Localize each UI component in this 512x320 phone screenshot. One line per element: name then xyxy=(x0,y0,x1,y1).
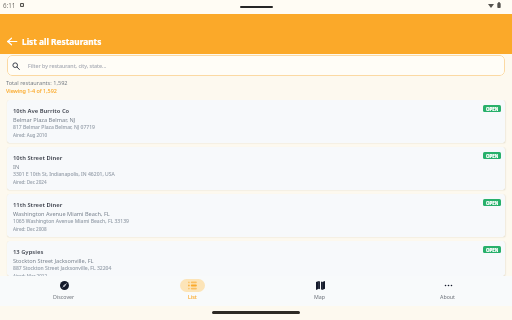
staticText: Aired: Mar 2012 xyxy=(13,273,48,276)
staticText: OPEN xyxy=(486,200,499,206)
staticText: Belmar Plaza Belmar, NJ xyxy=(13,116,76,124)
staticText: 10th Ave Burrito Co xyxy=(13,107,70,115)
staticText: 10th Street Diner xyxy=(13,154,63,162)
staticText: 817 Belmar Plaza Belmar, NJ 07719 xyxy=(13,124,95,131)
staticText: Aired: Dec 2008 xyxy=(13,226,47,232)
button[interactable]: 13 Gypsies xyxy=(7,241,505,276)
staticText: Viewing 1-4 of 1,592 xyxy=(6,87,57,94)
staticText: Aired: Aug 2010 xyxy=(13,132,48,138)
staticText: Aired: Dec 2024 xyxy=(13,179,47,185)
button[interactable]: Discover xyxy=(0,276,128,306)
button[interactable]: 10th Ave Burrito Co xyxy=(7,100,505,143)
staticText: OPEN xyxy=(486,153,499,159)
button[interactable]: Map xyxy=(256,276,384,306)
staticText: 6:11 xyxy=(3,1,16,9)
staticText: OPEN xyxy=(486,106,499,112)
button[interactable]: Filter by restaurant, city, state... xyxy=(7,55,505,76)
staticText: List xyxy=(188,293,197,300)
other: About xyxy=(444,281,453,290)
staticText: Map xyxy=(314,293,326,300)
staticText: Filter by restaurant, city, state... xyxy=(28,62,107,69)
button[interactable]: About xyxy=(384,276,512,306)
staticText: 3301 E 10th St, Indianapolis, IN 46201, … xyxy=(13,171,115,178)
other: List xyxy=(188,281,197,290)
staticText: Total restaurants: 1,592 xyxy=(6,79,68,87)
staticText: 1065 Washington Avenue Miami Beach, FL 3… xyxy=(13,218,129,225)
staticText: Washington Avenue Miami Beach, FL xyxy=(13,210,110,218)
other: Map xyxy=(316,281,325,290)
staticText: About xyxy=(440,293,456,300)
button[interactable]: List xyxy=(128,276,256,306)
staticText: OPEN xyxy=(486,247,499,253)
other: Discover xyxy=(60,281,69,290)
button[interactable]: 10th Street Diner xyxy=(7,147,505,190)
button[interactable]: 11th Street Diner xyxy=(7,194,505,237)
staticText: Stockton Street Jacksonville, FL xyxy=(13,257,94,265)
staticText: Discover xyxy=(53,293,75,300)
button[interactable]: Back xyxy=(4,34,20,49)
staticText: 887 Stockton Street Jacksonville, FL 322… xyxy=(13,265,112,272)
staticText: IN xyxy=(13,163,20,171)
staticText: 13 Gypsies xyxy=(13,248,44,256)
staticText: List all Restaurants xyxy=(22,36,102,47)
staticText: 11th Street Diner xyxy=(13,201,63,209)
